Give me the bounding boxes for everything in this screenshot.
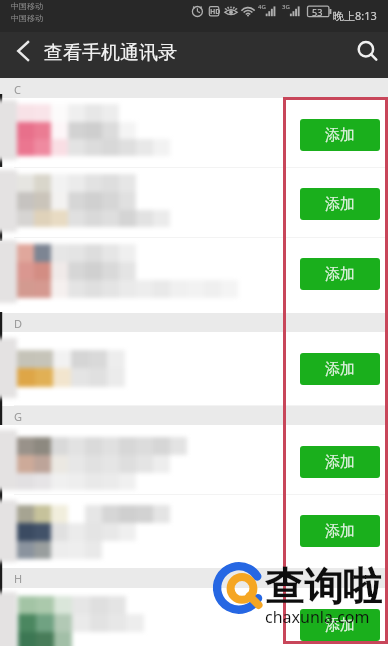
staticText: G [14, 409, 23, 424]
staticText: 晚上8:13 [333, 8, 377, 23]
button[interactable]: 添加 [300, 609, 380, 641]
staticText: 添加 [325, 265, 355, 284]
staticText: 中国移动 [11, 1, 43, 11]
button[interactable]: 查看手机通讯录 [44, 41, 177, 65]
button[interactable]: 添加 [300, 188, 380, 220]
button[interactable]: 添加 [300, 258, 380, 290]
staticText: 中国移动 [11, 13, 43, 23]
button[interactable]: 添加 [300, 353, 380, 385]
staticText: D [14, 316, 23, 331]
staticText: 查询啦 [265, 562, 382, 611]
staticText: 添加 [325, 195, 355, 214]
button[interactable]: Back [5, 32, 41, 70]
staticText: HD [210, 7, 221, 17]
staticText: 添加 [325, 522, 355, 541]
button[interactable]: 添加 [300, 119, 380, 151]
staticText: 添加 [325, 126, 355, 145]
staticText: H [14, 571, 23, 586]
staticText: C [14, 82, 21, 97]
button[interactable]: 添加 [300, 446, 380, 478]
staticText: 添加 [325, 616, 355, 635]
staticText: 53 [312, 6, 323, 18]
staticText: 4G [258, 3, 266, 11]
staticText: 添加 [325, 453, 355, 472]
staticText: 添加 [325, 360, 355, 379]
button[interactable]: Search [348, 32, 388, 78]
staticText: 3G [282, 3, 290, 11]
button[interactable]: 添加 [300, 515, 380, 547]
staticText: chaxunla.com [265, 606, 370, 628]
